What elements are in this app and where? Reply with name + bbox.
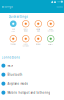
staticText: Lock: [24, 43, 28, 45]
staticText: screen: [48, 30, 54, 32]
staticText: Mobile: [36, 28, 40, 30]
button[interactable]: Themes: [7, 34, 19, 49]
button[interactable]: Edit: [7, 19, 19, 34]
staticText: Bluetooth: [7, 73, 22, 76]
staticText: screen: [23, 45, 29, 47]
staticText: mode: [24, 30, 28, 32]
button[interactable]: Wi-Fi: [0, 61, 64, 70]
staticText: Wi-Fi: [7, 64, 13, 67]
button[interactable]: SEARCH: [56, 6, 62, 8]
button[interactable]: Mobile hotspot and tethering: [0, 88, 64, 97]
button[interactable]: Bluetooth: [0, 70, 64, 79]
staticText: Settings: [1, 5, 12, 8]
button[interactable]: Dark: [19, 19, 32, 34]
staticText: SEARCH: [56, 6, 62, 8]
staticText: Connections: [2, 56, 20, 59]
button[interactable]: Battery: [44, 34, 57, 49]
staticText: Mobile hotspot and tethering: [7, 91, 50, 94]
staticText: Battery: [48, 43, 53, 45]
button[interactable]: Lock: [19, 34, 32, 49]
staticText: 100%: [57, 1, 61, 3]
button[interactable]: Mobile: [32, 19, 44, 34]
button[interactable]: Airplane mode: [0, 79, 64, 88]
staticText: Display: [36, 43, 41, 45]
staticText: Quick settings: [9, 15, 28, 18]
button[interactable]: Home: [44, 19, 57, 34]
staticText: Themes: [10, 43, 16, 45]
staticText: data: [37, 30, 40, 32]
staticText: Home: [49, 28, 53, 30]
staticText: setup: [11, 30, 15, 32]
button[interactable]: Display: [32, 34, 44, 49]
staticText: Edit: [12, 28, 14, 30]
staticText: Airplane mode: [7, 82, 28, 85]
staticText: Dark: [24, 28, 28, 30]
